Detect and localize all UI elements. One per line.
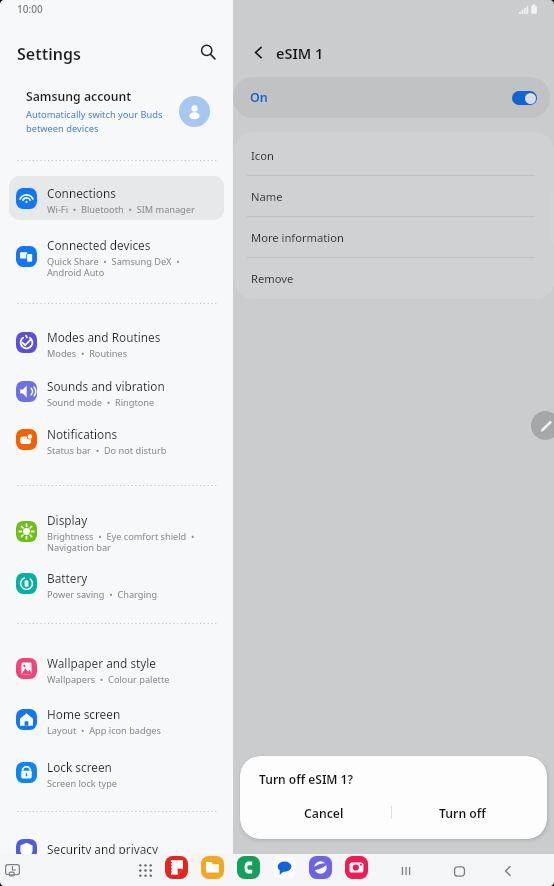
button[interactable]: Connected devices	[9, 231, 224, 281]
staticText: Wi-Fi • Bluetooth • SIM manager	[47, 203, 195, 216]
staticText: Display	[47, 512, 88, 528]
button[interactable]: Icon	[234, 135, 554, 176]
staticText: Lock screen	[47, 759, 112, 775]
staticText: Connections	[47, 185, 116, 201]
button[interactable]: Phone	[237, 856, 260, 879]
button[interactable]: Notes	[165, 856, 188, 879]
button[interactable]: Lock screen	[9, 750, 224, 794]
button[interactable]: On	[233, 77, 550, 118]
button[interactable]: Cancel	[258, 800, 390, 826]
staticText: eSIM 1	[276, 43, 324, 63]
staticText: Turn off eSIM 1?	[259, 771, 353, 787]
button[interactable]: Sounds and vibration	[9, 369, 224, 413]
button[interactable]: Home screen	[9, 697, 224, 741]
staticText: More information	[251, 230, 344, 245]
button[interactable]: Notifications	[9, 417, 224, 461]
staticText: Layout • App icon badges	[47, 724, 161, 737]
button[interactable]: Battery	[9, 561, 224, 605]
button[interactable]: Connections	[9, 176, 224, 220]
button[interactable]: Recents	[396, 861, 416, 881]
button[interactable]: Home	[449, 861, 469, 881]
staticText: Sounds and vibration	[47, 378, 165, 394]
staticText: Battery	[47, 570, 88, 586]
staticText: Security and privacy	[47, 841, 159, 857]
staticText: Brightness • Eye comfort shield • Naviga…	[47, 530, 195, 554]
button[interactable]: Wallpaper and style	[9, 646, 224, 690]
staticText: Settings	[17, 43, 81, 65]
staticText: Connected devices	[47, 237, 151, 253]
button[interactable]: More information	[234, 217, 554, 258]
staticText: Power saving • Charging	[47, 588, 158, 601]
staticText: Sound mode • Ringtone	[47, 396, 155, 409]
staticText: On	[250, 89, 268, 106]
button[interactable]: Recent apps	[2, 860, 22, 880]
staticText: Icon	[251, 148, 274, 163]
button[interactable]: Name	[234, 176, 554, 217]
staticText: Wallpaper and style	[47, 655, 157, 671]
staticText: Name	[251, 189, 283, 204]
staticText: Modes • Routines	[47, 347, 128, 360]
button[interactable]: Samsung account	[0, 82, 233, 140]
staticText: Samsung account	[26, 88, 132, 105]
staticText: Modes and Routines	[47, 329, 161, 345]
staticText: Status bar • Do not disturb	[47, 444, 167, 457]
staticText: Home screen	[47, 706, 121, 722]
button[interactable]: Camera	[345, 856, 368, 879]
button[interactable]: Messages	[273, 856, 296, 879]
button[interactable]: Remove	[234, 258, 554, 299]
button[interactable]: Back	[498, 861, 518, 881]
staticText: Cancel	[304, 805, 344, 822]
button[interactable]: Apps	[136, 861, 154, 879]
staticText: 10:00	[17, 2, 43, 16]
staticText: Screen lock type	[47, 777, 117, 790]
staticText: Remove	[251, 271, 294, 286]
button[interactable]: Modes and Routines	[9, 320, 224, 364]
button[interactable]: Search	[194, 38, 222, 66]
button[interactable]: Security and privacy	[9, 830, 224, 868]
button[interactable]: Turn off	[396, 800, 528, 826]
button[interactable]: Display	[9, 506, 224, 556]
button[interactable]: Edit	[531, 411, 554, 440]
staticText: Quick Share • Samsung DeX • Android Auto	[47, 255, 180, 279]
button[interactable]: Internet	[309, 856, 332, 879]
button[interactable]: Back	[245, 39, 271, 65]
staticText: Turn off	[439, 805, 486, 822]
staticText: Wallpapers • Colour palette	[47, 673, 170, 686]
staticText: Notifications	[47, 426, 118, 442]
button[interactable]: My Files	[201, 856, 224, 879]
staticText: Automatically switch your Buds between d…	[26, 108, 163, 134]
